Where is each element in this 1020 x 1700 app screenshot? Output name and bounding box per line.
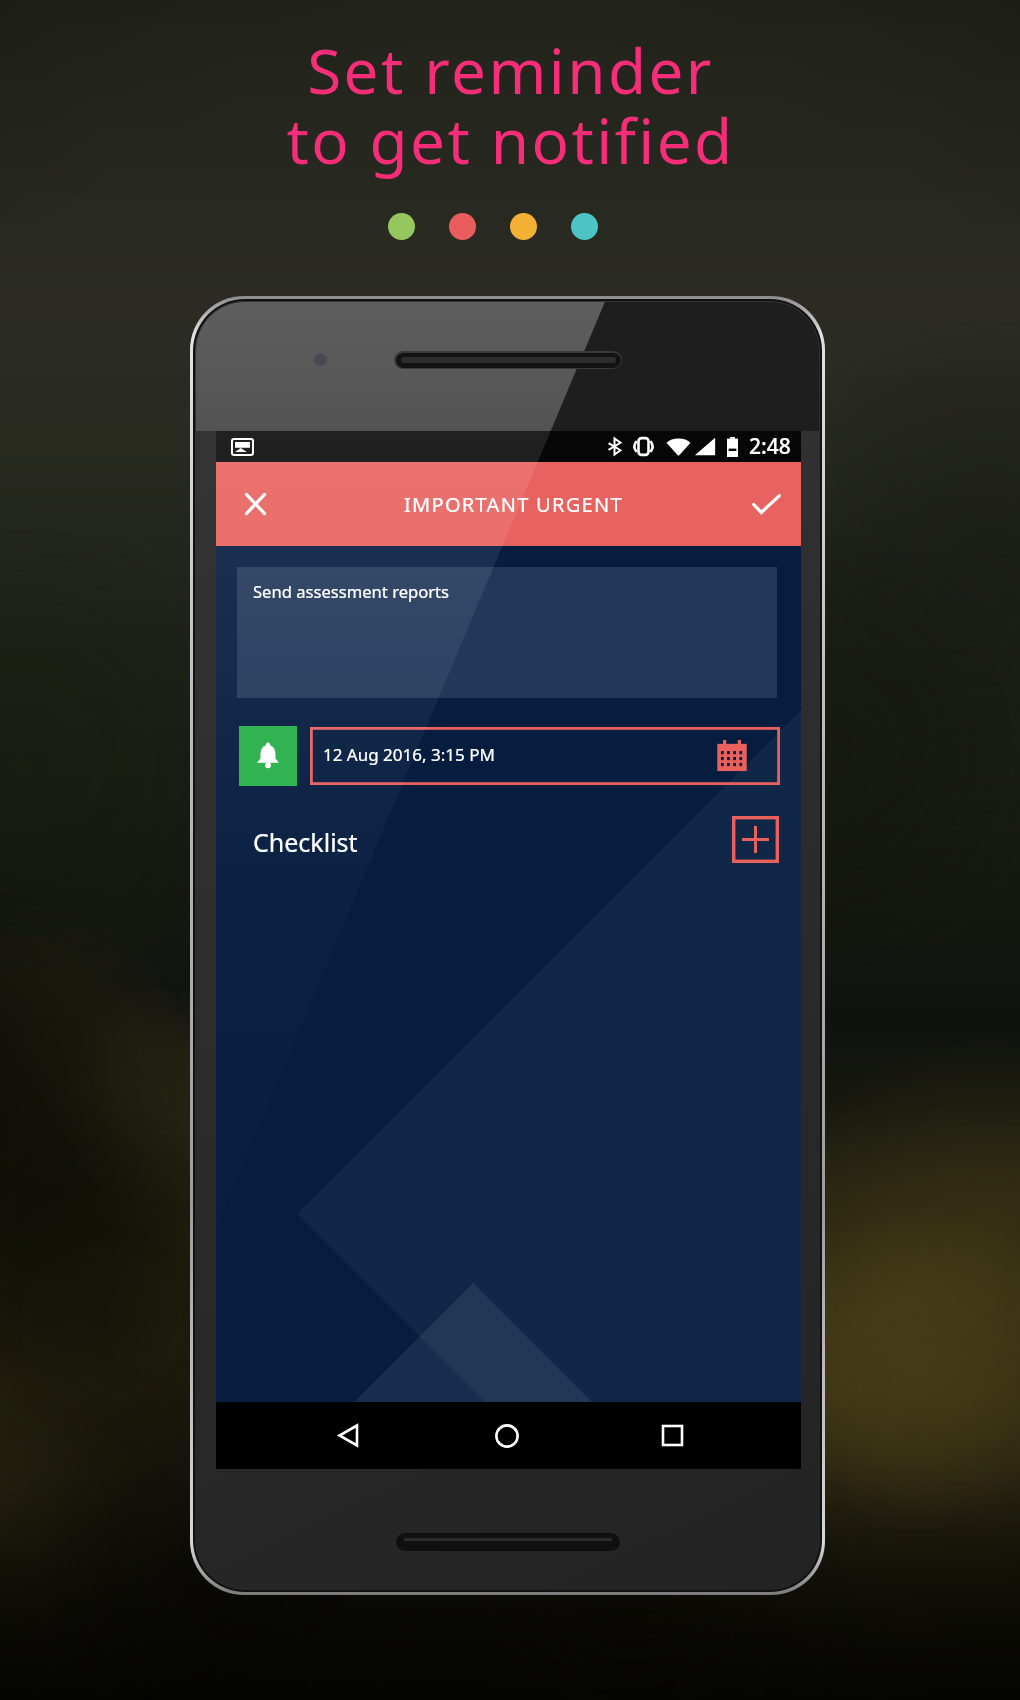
button[interactable]: Add checklist item (732, 816, 779, 863)
button[interactable]: Send assessment reports (237, 567, 777, 698)
button[interactable]: Home (473, 1402, 541, 1469)
button[interactable]: Close (216, 462, 295, 546)
staticText: IMPORTANT URGENT (404, 491, 623, 518)
staticText: 12 Aug 2016, 3:15 PM (323, 743, 495, 766)
staticText: 2:48 (749, 432, 791, 461)
button[interactable]: Recent apps (638, 1402, 706, 1469)
button[interactable]: Save (732, 462, 801, 546)
staticText: Set reminder to get notified (286, 28, 735, 182)
button[interactable]: Back (314, 1402, 382, 1469)
button[interactable]: Reminder (239, 726, 297, 786)
staticText: Checklist (253, 825, 358, 859)
staticText: Send assessment reports (253, 580, 450, 603)
button[interactable]: 12 Aug 2016, 3:15 PM (310, 727, 780, 785)
